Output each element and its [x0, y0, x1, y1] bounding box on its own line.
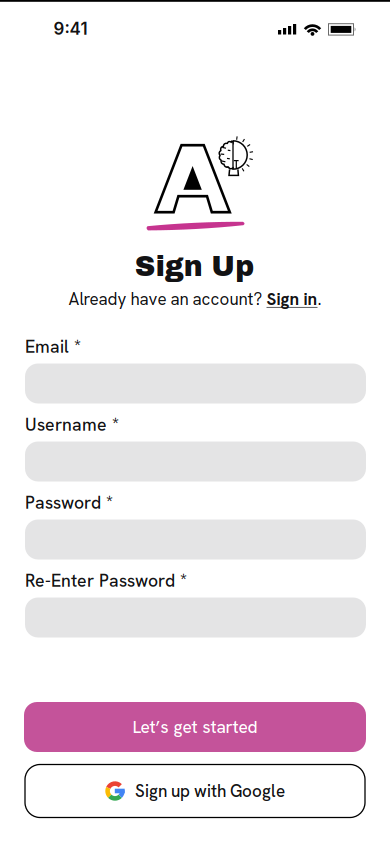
staticText: Password * — [25, 491, 113, 514]
staticText: Up — [211, 251, 254, 282]
staticText: . — [317, 288, 321, 310]
staticText: 9:41 — [53, 18, 87, 39]
staticText: Re-Enter Password * — [25, 569, 187, 592]
button[interactable]: Sign in — [266, 288, 317, 310]
button[interactable]: Password * — [25, 519, 366, 559]
button[interactable]: Username * — [25, 441, 366, 481]
staticText: Username * — [25, 413, 119, 436]
button[interactable]: Re-Enter Password * — [25, 597, 366, 637]
staticText: Sign up with Google — [135, 780, 285, 802]
staticText: Sign — [135, 251, 203, 282]
staticText: Let’s get started — [132, 716, 257, 738]
button[interactable]: Sign up with Google — [25, 764, 365, 817]
button[interactable]: Let’s get started — [24, 702, 366, 752]
button[interactable]: Email * — [25, 363, 366, 403]
staticText: Sign in — [266, 288, 317, 310]
staticText: Already have an account? — [68, 288, 266, 310]
staticText: Email * — [25, 335, 81, 358]
